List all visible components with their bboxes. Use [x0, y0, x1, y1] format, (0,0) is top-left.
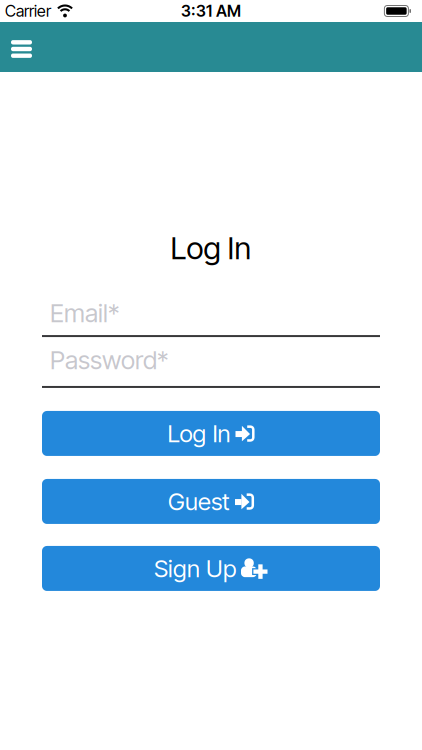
staticText: 3:31 AM — [181, 2, 241, 20]
button[interactable]: Menu — [0, 22, 32, 72]
staticText: Guest — [168, 487, 230, 516]
staticText: Email* — [50, 298, 119, 328]
button[interactable]: Sign Up — [42, 546, 380, 591]
staticText: Log In — [167, 419, 230, 448]
staticText: Log In — [170, 230, 251, 266]
button[interactable]: Guest — [42, 479, 380, 524]
staticText: Sign Up — [154, 554, 236, 583]
button[interactable]: Log In — [42, 411, 380, 456]
button[interactable]: Email* — [42, 298, 380, 337]
button[interactable]: Password* — [42, 345, 380, 388]
staticText: Password* — [50, 345, 168, 375]
staticText: Carrier — [5, 2, 51, 20]
